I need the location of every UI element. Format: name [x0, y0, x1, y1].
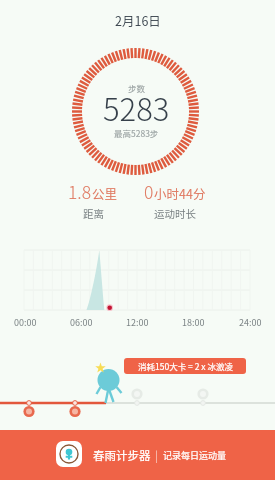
staticText: 18:00 [182, 316, 205, 329]
staticText: 06:00 [70, 316, 93, 329]
button[interactable]: 1.8 [33, 179, 153, 221]
button[interactable] [72, 48, 199, 175]
staticText: 小时44分 [154, 184, 206, 202]
staticText: 00:00 [14, 316, 37, 329]
button[interactable]: 消耗150大卡 = 2 x 冰激凌 [124, 358, 246, 374]
staticText: 公里 [92, 184, 118, 202]
staticText: 春雨计步器 [93, 447, 151, 464]
button[interactable]: 春雨计步器 [0, 430, 275, 480]
staticText: 记录每日运动量 [163, 449, 227, 462]
staticText: 24:00 [239, 316, 262, 329]
staticText: 2月16日 [115, 11, 161, 29]
staticText: 运动时长 [154, 206, 196, 221]
staticText: 12:00 [126, 316, 149, 329]
staticText: 5283 [103, 85, 170, 130]
staticText: 消耗150大卡 = 2 x 冰激凌 [138, 360, 233, 372]
staticText: 步数 [128, 82, 146, 94]
button[interactable]: 0 [115, 179, 235, 221]
staticText: 1.8 [68, 179, 92, 204]
staticText: 0 [144, 179, 154, 204]
staticText: 距离 [83, 206, 104, 221]
staticText: 最高5283步 [114, 127, 159, 139]
staticText: | [155, 447, 158, 463]
